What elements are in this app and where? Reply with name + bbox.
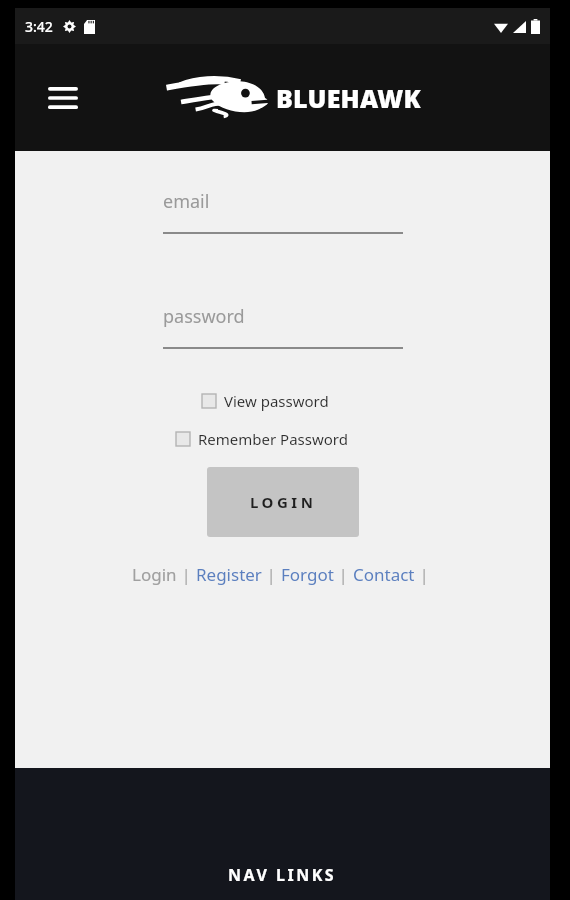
button[interactable]: LOGIN: [207, 467, 359, 537]
button[interactable]: email: [163, 189, 403, 234]
staticText: Forgot: [281, 563, 334, 586]
button[interactable]: Login: [132, 563, 177, 586]
staticText: email: [163, 189, 210, 214]
staticText: 3:42: [25, 17, 53, 36]
button[interactable]: BLUEHAWK: [162, 69, 421, 127]
staticText: LOGIN: [250, 492, 317, 512]
button[interactable]: Register: [196, 563, 262, 586]
staticText: |: [177, 563, 196, 586]
staticText: |: [415, 563, 434, 586]
button[interactable]: Remember Password: [176, 429, 408, 449]
staticText: Remember Password: [198, 429, 348, 449]
staticText: NAV LINKS: [228, 864, 337, 886]
button[interactable]: password: [163, 304, 403, 349]
button[interactable]: View password: [202, 391, 408, 411]
button[interactable]: Contact: [353, 563, 415, 586]
button[interactable]: Forgot: [281, 563, 334, 586]
staticText: BLUEHAWK: [276, 81, 421, 115]
staticText: Contact: [353, 563, 415, 586]
staticText: password: [163, 304, 245, 329]
staticText: |: [334, 563, 353, 586]
staticText: |: [262, 563, 281, 586]
staticText: Register: [196, 563, 262, 586]
staticText: Login: [132, 563, 177, 586]
staticText: View password: [224, 391, 329, 411]
button[interactable]: Open navigation menu: [41, 76, 85, 120]
button[interactable]: NAV LINKS: [228, 864, 337, 886]
